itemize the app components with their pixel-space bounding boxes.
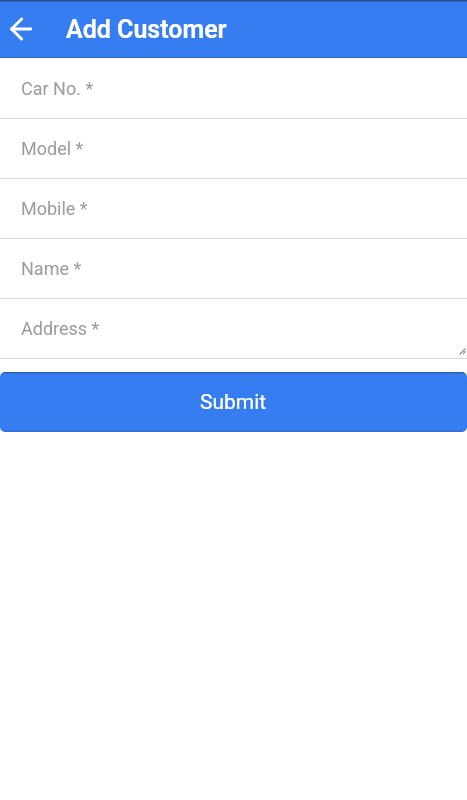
staticText: Name *: [21, 258, 82, 279]
button[interactable]: Model *: [0, 119, 467, 178]
staticText: Model *: [21, 138, 84, 159]
staticText: Add Customer: [66, 15, 227, 44]
staticText: Address *: [21, 318, 100, 339]
staticText: Submit: [200, 390, 267, 415]
button[interactable]: Address *: [0, 299, 467, 358]
button[interactable]: Name *: [0, 239, 467, 298]
staticText: Car No. *: [21, 78, 94, 99]
button[interactable]: Navigate up: [0, 8, 42, 50]
button[interactable]: Mobile *: [0, 179, 467, 238]
button[interactable]: Submit: [0, 372, 467, 432]
staticText: Mobile *: [21, 198, 88, 219]
button[interactable]: Car No. *: [0, 58, 467, 118]
